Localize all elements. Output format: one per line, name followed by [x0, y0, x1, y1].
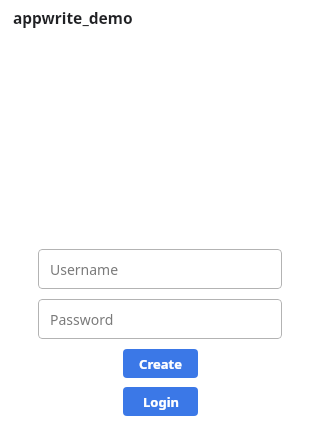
- button[interactable]: Password: [38, 299, 282, 339]
- staticText: Password: [50, 310, 114, 329]
- staticText: Username: [50, 260, 119, 279]
- button[interactable]: Login: [123, 387, 198, 416]
- button[interactable]: Create: [123, 349, 198, 378]
- button[interactable]: Username: [38, 249, 282, 289]
- staticText: appwrite_demo: [13, 7, 133, 28]
- staticText: Create: [139, 355, 182, 373]
- staticText: Login: [143, 393, 179, 411]
